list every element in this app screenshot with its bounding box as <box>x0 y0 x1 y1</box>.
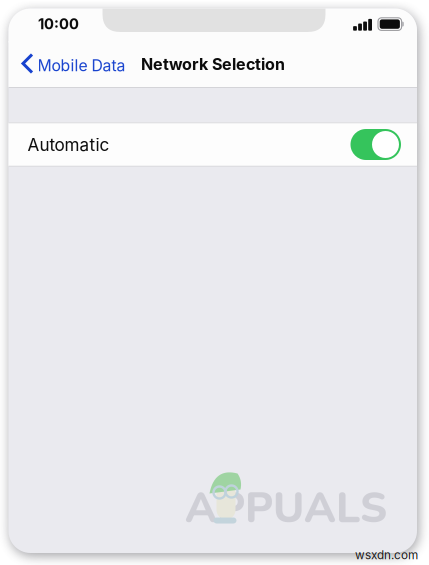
staticText: wsxdn.com <box>355 548 418 562</box>
staticText: Mobile Data <box>37 56 125 75</box>
staticText: Network Selection <box>141 54 285 74</box>
staticText: APPUALS <box>185 479 387 537</box>
button[interactable]: Automatic <box>8 122 417 166</box>
button[interactable]: Mobile Data <box>20 46 133 82</box>
staticText: 10:00 <box>38 15 79 33</box>
staticText: Automatic <box>27 134 109 155</box>
